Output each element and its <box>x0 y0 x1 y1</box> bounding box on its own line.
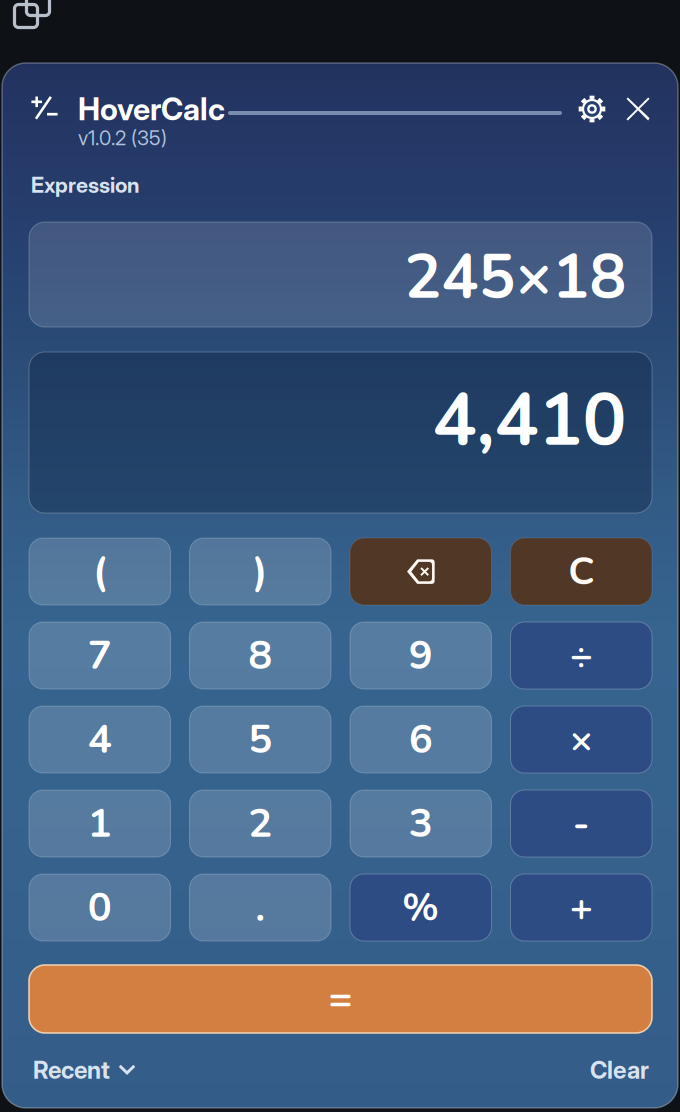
staticText: - <box>573 797 590 850</box>
button[interactable]: = <box>29 965 652 1033</box>
button[interactable]: - <box>510 790 652 857</box>
staticText: . <box>255 880 265 935</box>
staticText: 3 <box>409 796 433 851</box>
staticText: × <box>570 713 593 766</box>
button[interactable]: ) <box>189 538 331 605</box>
button[interactable]: 6 <box>350 706 491 773</box>
staticText: v1.0.2 (35) <box>78 126 167 150</box>
staticText: 5 <box>248 712 272 767</box>
staticText: 1 <box>88 796 112 851</box>
button[interactable]: 2 <box>189 790 331 857</box>
staticText: = <box>328 972 352 1026</box>
staticText: + <box>570 881 593 934</box>
button[interactable]: 3 <box>350 790 491 857</box>
staticText: Expression <box>31 172 139 198</box>
staticText: 4 <box>88 712 112 767</box>
staticText: 9 <box>409 628 433 683</box>
button[interactable]: 1 <box>29 790 170 857</box>
staticText: 7 <box>88 628 112 683</box>
staticText: HoverCalc <box>78 90 225 127</box>
staticText: 0 <box>88 880 112 935</box>
staticText: C <box>568 545 594 598</box>
button[interactable]: 0 <box>29 874 170 941</box>
staticText: Clear <box>590 1055 649 1084</box>
staticText: 8 <box>248 628 272 683</box>
button[interactable]: Clear <box>590 1055 649 1085</box>
staticText: ( <box>93 544 107 599</box>
staticText: % <box>402 881 439 934</box>
button[interactable]: × <box>510 706 652 773</box>
button[interactable]: Window controls <box>14 0 50 28</box>
button[interactable]: 9 <box>350 622 491 689</box>
button[interactable]: Settings <box>578 95 606 123</box>
staticText: ÷ <box>570 629 593 682</box>
button[interactable]: 4 <box>29 706 170 773</box>
button[interactable]: C <box>510 538 652 605</box>
button[interactable]: . <box>189 874 331 941</box>
button[interactable]: ÷ <box>510 622 652 689</box>
staticText: ) <box>253 544 267 599</box>
button[interactable] <box>350 538 491 605</box>
button[interactable]: + <box>510 874 652 941</box>
staticText: 245×18 <box>404 236 626 319</box>
staticText: 2 <box>248 796 272 851</box>
staticText: 6 <box>409 712 433 767</box>
button[interactable]: 8 <box>189 622 331 689</box>
staticText: 4,410 <box>432 370 626 470</box>
button[interactable]: 5 <box>189 706 331 773</box>
button[interactable]: Close <box>626 97 649 120</box>
button[interactable]: ( <box>29 538 170 605</box>
button[interactable]: % <box>350 874 491 941</box>
staticText: Recent <box>33 1055 110 1084</box>
button[interactable]: 7 <box>29 622 170 689</box>
button[interactable]: Recent <box>33 1055 137 1085</box>
